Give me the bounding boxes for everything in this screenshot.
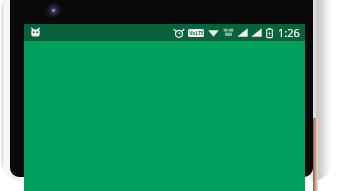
staticText: VoLTE <box>189 30 204 37</box>
button[interactable]: Notification <box>24 24 305 41</box>
other: Notification <box>30 27 41 38</box>
staticText: 1:26 <box>278 25 300 40</box>
